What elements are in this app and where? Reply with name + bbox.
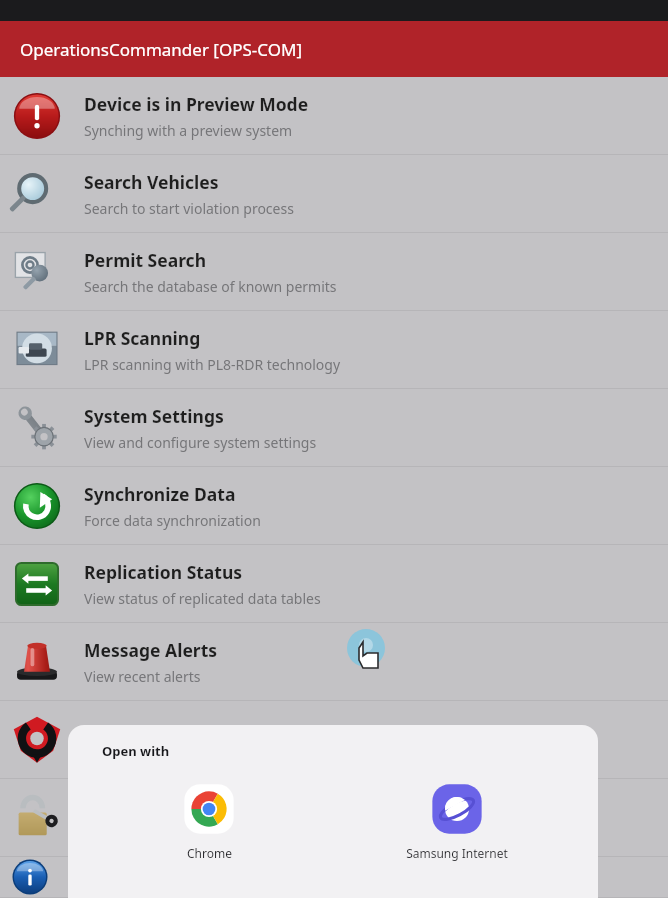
staticText: OperationsCommander [OPS-COM] — [20, 38, 302, 61]
button[interactable]: Search Vehicles — [0, 155, 668, 233]
button[interactable]: System Settings — [0, 389, 668, 467]
staticText: Samsung Internet — [406, 845, 508, 861]
button[interactable]: Message Alerts — [0, 623, 668, 701]
button[interactable]: Samsung Internet — [386, 777, 528, 865]
staticText: Chrome — [187, 845, 232, 861]
staticText: System Settings — [84, 404, 224, 428]
staticText: Force data synchronization — [84, 511, 261, 530]
staticText: Message Alerts — [84, 638, 218, 662]
button[interactable] — [0, 779, 668, 857]
button[interactable]: Chrome — [138, 777, 280, 865]
button[interactable]: Replication Status — [0, 545, 668, 623]
staticText: Replication Status — [84, 560, 243, 584]
button[interactable]: Permit Search — [0, 233, 668, 311]
button[interactable]: Synchronize Data — [0, 467, 668, 545]
staticText: Search the database of known permits — [84, 277, 337, 296]
staticText: LPR scanning with PL8-RDR technology — [84, 355, 341, 374]
staticText: Synchronize Data — [84, 482, 236, 506]
button[interactable]: Device is in Preview Mode — [0, 77, 668, 155]
button[interactable]: OperationsCommander [OPS-COM] — [0, 21, 668, 77]
staticText: Device is in Preview Mode — [84, 92, 309, 116]
staticText: Permit Search — [84, 248, 207, 272]
staticText: Synching with a preview system — [84, 121, 293, 140]
staticText: OPS-COM on the Web — [84, 728, 269, 752]
button[interactable]: OPS-COM on the Web — [0, 701, 668, 779]
staticText: View and configure system settings — [84, 433, 317, 452]
staticText: View status of replicated data tables — [84, 589, 321, 608]
staticText: LPR Scanning — [84, 326, 201, 350]
staticText: Search Vehicles — [84, 170, 219, 194]
button[interactable] — [0, 857, 668, 898]
staticText: View recent alerts — [84, 667, 201, 686]
staticText: Open with — [102, 742, 170, 760]
button[interactable]: LPR Scanning — [0, 311, 668, 389]
staticText: Search to start violation process — [84, 199, 294, 218]
